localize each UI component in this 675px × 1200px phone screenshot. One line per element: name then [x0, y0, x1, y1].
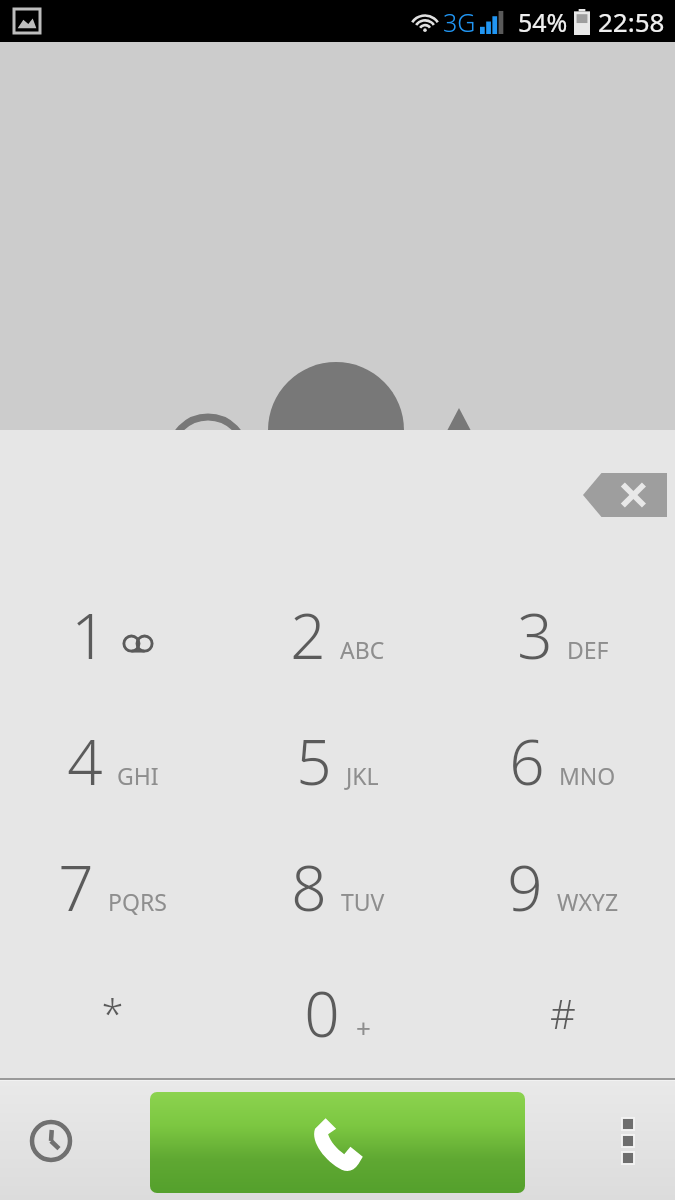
staticText: 9: [507, 845, 543, 929]
staticText: WXYZ: [557, 886, 619, 917]
staticText: MNO: [559, 760, 616, 791]
button[interactable]: Delete: [583, 473, 667, 517]
staticText: 2: [290, 593, 326, 677]
button[interactable]: 6: [450, 698, 675, 824]
button[interactable]: 3: [450, 572, 675, 698]
button[interactable]: 9: [450, 824, 675, 950]
staticText: 8: [291, 845, 327, 929]
button[interactable]: More options: [599, 1112, 657, 1170]
staticText: GHI: [117, 760, 159, 791]
button[interactable]: Call: [150, 1092, 525, 1193]
staticText: 4: [67, 719, 103, 803]
button[interactable]: 2: [225, 572, 450, 698]
staticText: +: [356, 1010, 371, 1045]
button[interactable]: 5: [225, 698, 450, 824]
staticText: 6: [509, 719, 545, 803]
staticText: 0: [304, 971, 340, 1055]
staticText: ABC: [340, 634, 385, 665]
staticText: 22:58: [598, 4, 665, 39]
staticText: TUV: [341, 886, 385, 917]
staticText: #: [550, 986, 576, 1040]
staticText: PQRS: [108, 886, 167, 917]
staticText: 5: [296, 719, 332, 803]
button[interactable]: 4: [0, 698, 225, 824]
staticText: JKL: [346, 760, 379, 791]
staticText: DEF: [567, 634, 609, 665]
staticText: *: [101, 986, 124, 1040]
button[interactable]: *: [0, 950, 225, 1076]
staticText: 7: [58, 845, 94, 929]
button[interactable]: 7: [0, 824, 225, 950]
staticText: 54%: [518, 5, 568, 39]
button[interactable]: Call history: [20, 1110, 82, 1172]
button[interactable]: 0: [225, 950, 450, 1076]
staticText: 3G: [443, 5, 476, 39]
button[interactable]: 1: [0, 572, 225, 698]
button[interactable]: 8: [225, 824, 450, 950]
staticText: 1: [71, 593, 107, 677]
button[interactable]: #: [450, 950, 675, 1076]
staticText: 3: [517, 593, 553, 677]
